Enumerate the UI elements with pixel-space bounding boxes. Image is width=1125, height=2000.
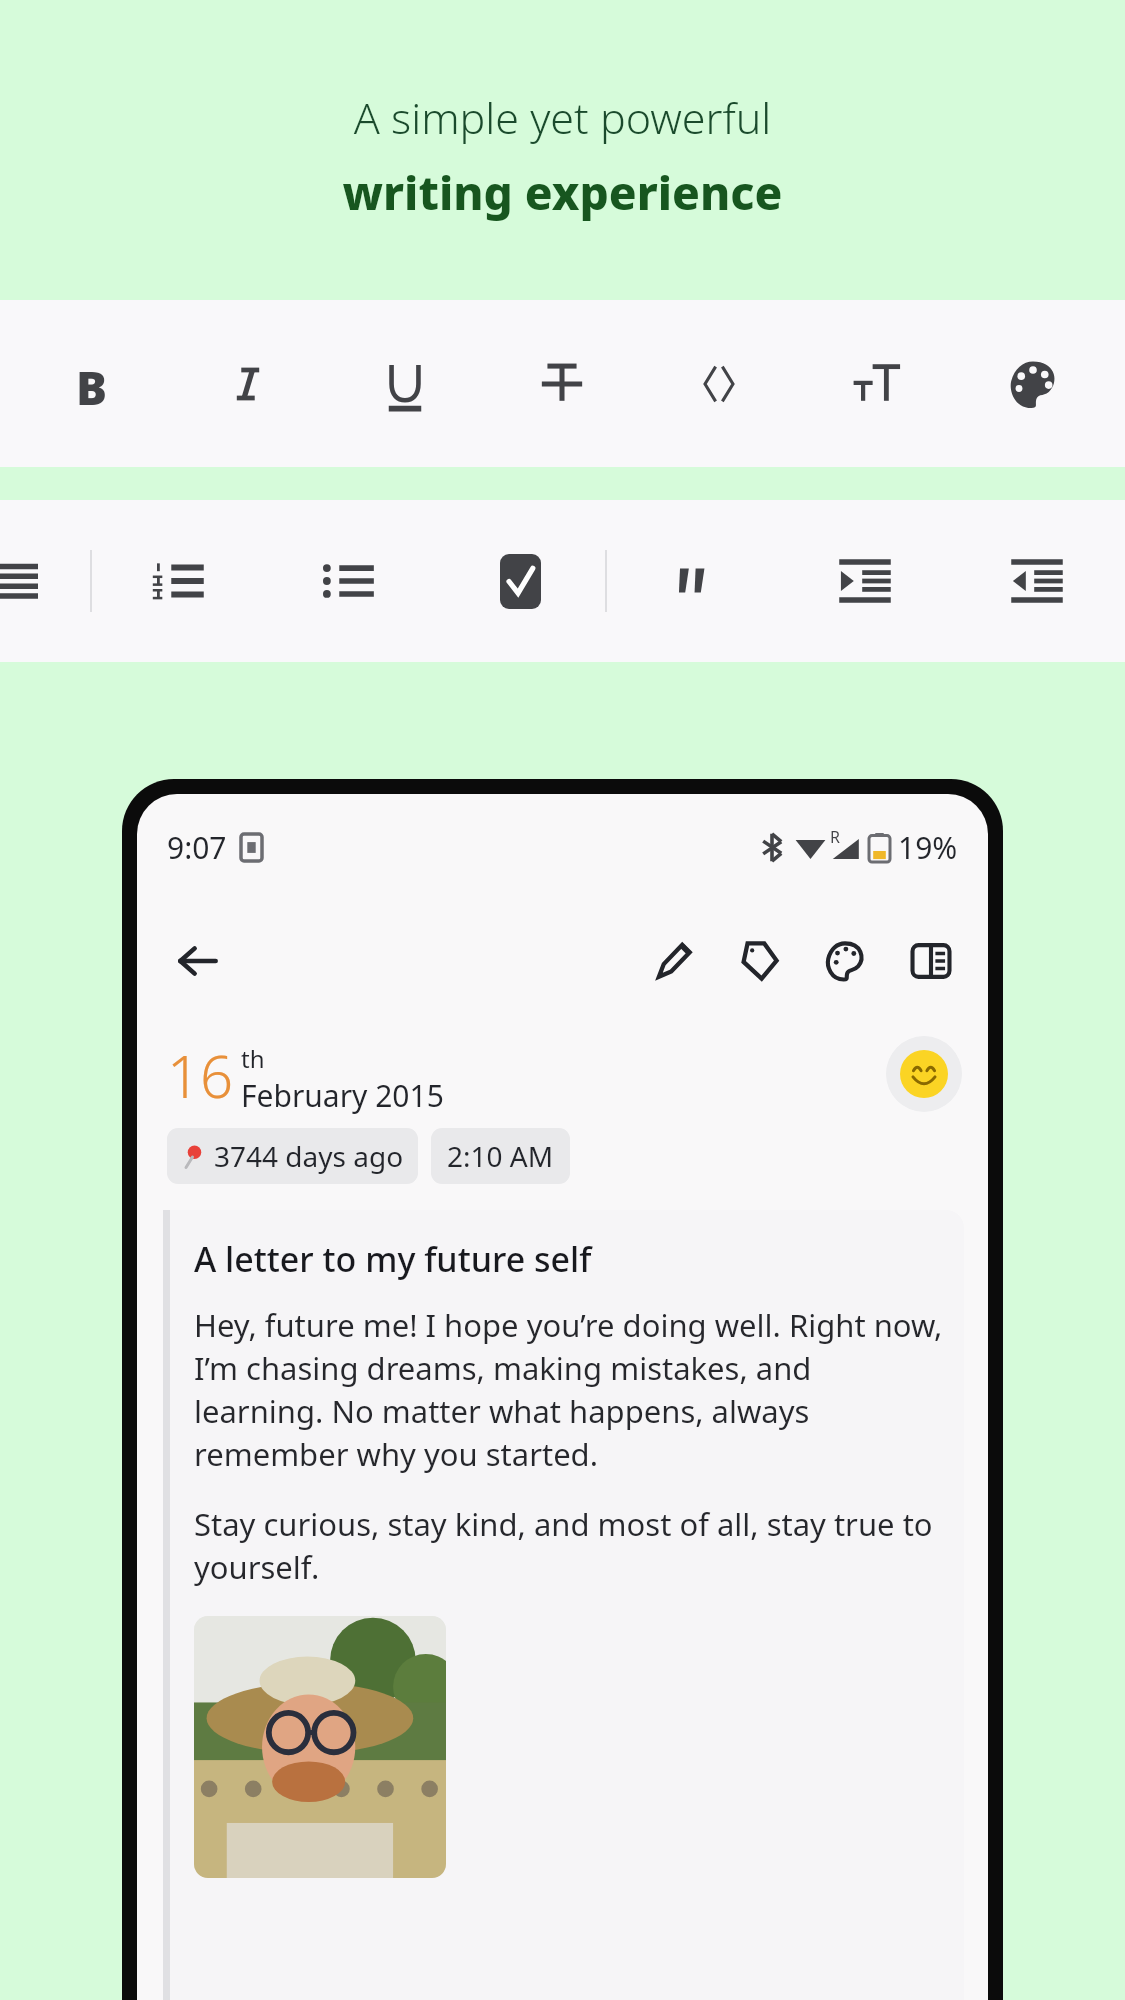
staticText: th xyxy=(241,1042,265,1075)
staticText: 19% xyxy=(898,827,958,868)
staticText: Stay curious, stay kind, and most of all… xyxy=(194,1503,946,1588)
staticText: 3744 days ago xyxy=(214,1137,404,1175)
button[interactable]: Checklist xyxy=(434,500,605,662)
button[interactable]: Indent xyxy=(779,500,951,662)
button[interactable]: Edit xyxy=(640,928,706,994)
button[interactable]: Quote xyxy=(607,500,779,662)
staticText: February 2015 xyxy=(241,1075,444,1116)
button[interactable]: 2:10 AM xyxy=(431,1128,570,1184)
staticText: A simple yet powerful xyxy=(0,88,1125,147)
button[interactable]: Outdent xyxy=(951,500,1123,662)
staticText: 2:10 AM xyxy=(447,1137,554,1175)
button[interactable]: Text color xyxy=(954,300,1111,467)
button[interactable]: Underline xyxy=(326,300,483,467)
staticText: R xyxy=(830,826,840,848)
staticText: Hey, future me! I hope you’re doing well… xyxy=(194,1304,946,1475)
button[interactable]: Mood xyxy=(886,1036,962,1112)
staticText: A letter to my future self xyxy=(194,1236,592,1282)
button[interactable]: Numbered list xyxy=(92,500,263,662)
button[interactable]: A letter to my future self xyxy=(170,1210,964,2000)
button[interactable]: Back xyxy=(161,924,235,998)
button[interactable]: Code block xyxy=(640,300,797,467)
button[interactable]: Align xyxy=(0,500,56,662)
staticText: 16 xyxy=(167,1036,234,1115)
button[interactable]: Theme xyxy=(812,928,878,994)
button[interactable]: Text size xyxy=(797,300,954,467)
button[interactable]: 3744 days ago xyxy=(167,1128,418,1184)
button[interactable]: Strikethrough xyxy=(483,300,640,467)
button[interactable]: Italic xyxy=(170,300,326,467)
staticText: 9:07 xyxy=(167,827,227,868)
button[interactable]: Bulleted list xyxy=(263,500,434,662)
button[interactable]: Tags xyxy=(726,928,792,994)
button[interactable]: Photo attachment xyxy=(194,1616,446,1878)
button[interactable]: Reading mode xyxy=(898,928,964,994)
button[interactable]: Bold xyxy=(14,300,170,467)
staticText: B xyxy=(76,356,108,412)
staticText: writing experience xyxy=(0,161,1125,224)
